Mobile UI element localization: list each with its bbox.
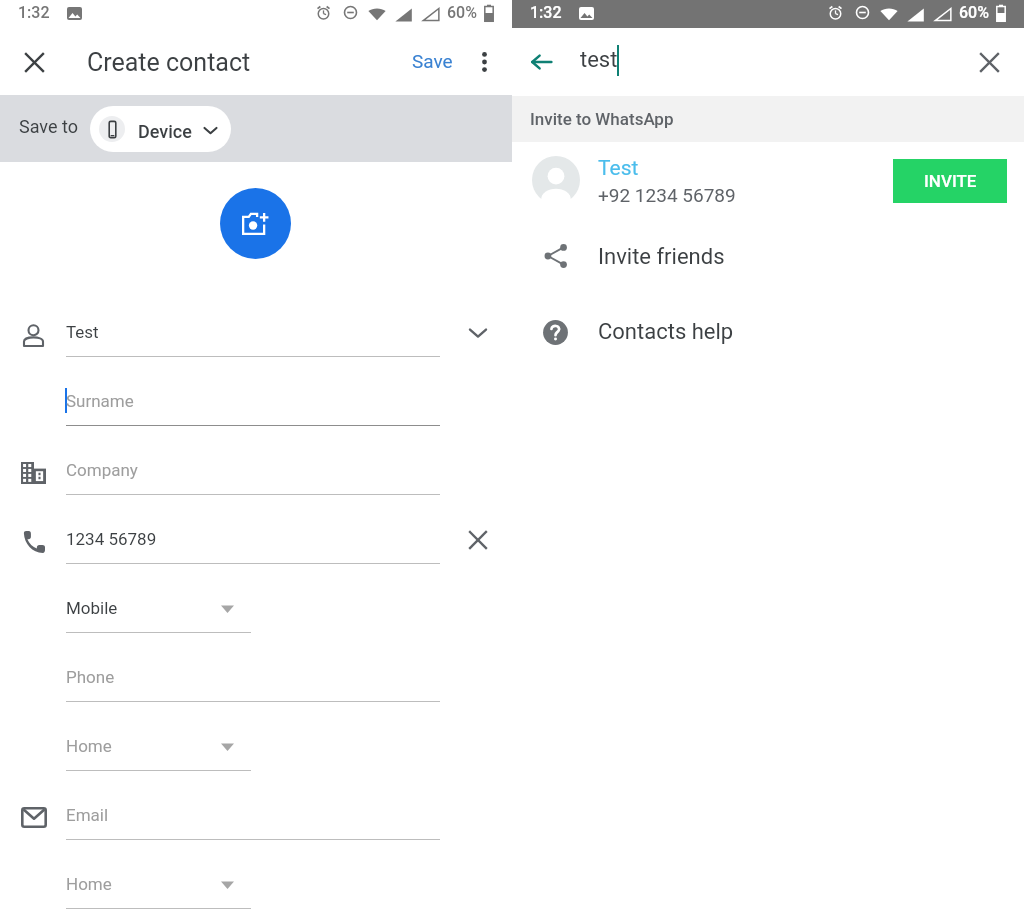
button[interactable]: Invite friends (512, 220, 1024, 295)
staticText: Invite to WhatsApp (530, 109, 674, 129)
button[interactable]: Expand name fields (456, 311, 500, 355)
button[interactable]: 1234 56789 (0, 517, 512, 586)
staticText: Home (66, 874, 112, 894)
staticText: Test (66, 322, 99, 342)
button[interactable]: Surname (0, 379, 512, 448)
staticText: Phone (66, 667, 115, 687)
staticText: 60% (447, 3, 477, 22)
button[interactable]: More options (462, 40, 506, 84)
staticText: Email (66, 805, 109, 825)
staticText: 60% (959, 3, 989, 22)
staticText: Surname (66, 391, 134, 411)
button[interactable]: Close (12, 40, 56, 84)
staticText: Contacts help (598, 319, 734, 345)
button[interactable]: Mobile (0, 586, 512, 655)
button[interactable]: Test (512, 146, 1024, 216)
staticText: Save to (19, 116, 78, 137)
staticText: INVITE (924, 171, 977, 191)
staticText: 1:32 (530, 3, 562, 22)
button[interactable]: Clear phone number (456, 518, 500, 562)
staticText: Invite friends (598, 244, 725, 270)
button[interactable]: Company (0, 448, 512, 517)
button[interactable]: Contacts help (512, 295, 1024, 370)
staticText: Home (66, 736, 112, 756)
staticText: Save (412, 50, 453, 72)
staticText: Company (66, 460, 138, 480)
button[interactable]: Save (404, 42, 461, 80)
staticText: Create contact (87, 48, 251, 77)
button[interactable]: INVITE (893, 159, 1007, 203)
staticText: 1234 56789 (66, 529, 157, 549)
button[interactable]: Clear search (967, 40, 1011, 84)
button[interactable]: Email (0, 793, 512, 862)
staticText: +92 1234 56789 (598, 184, 736, 206)
button[interactable]: Add contact photo (220, 188, 291, 259)
button[interactable]: Test (0, 310, 512, 379)
staticText: 1:32 (18, 3, 50, 22)
staticText: Mobile (66, 598, 118, 618)
button[interactable]: Device (90, 106, 231, 152)
button[interactable]: Home (0, 862, 512, 911)
button[interactable]: Phone (0, 655, 512, 724)
button[interactable]: Home (0, 724, 512, 793)
staticText: test (580, 47, 618, 73)
button[interactable]: Back (519, 40, 563, 84)
staticText: Test (598, 156, 639, 181)
staticText: Device (138, 121, 192, 142)
